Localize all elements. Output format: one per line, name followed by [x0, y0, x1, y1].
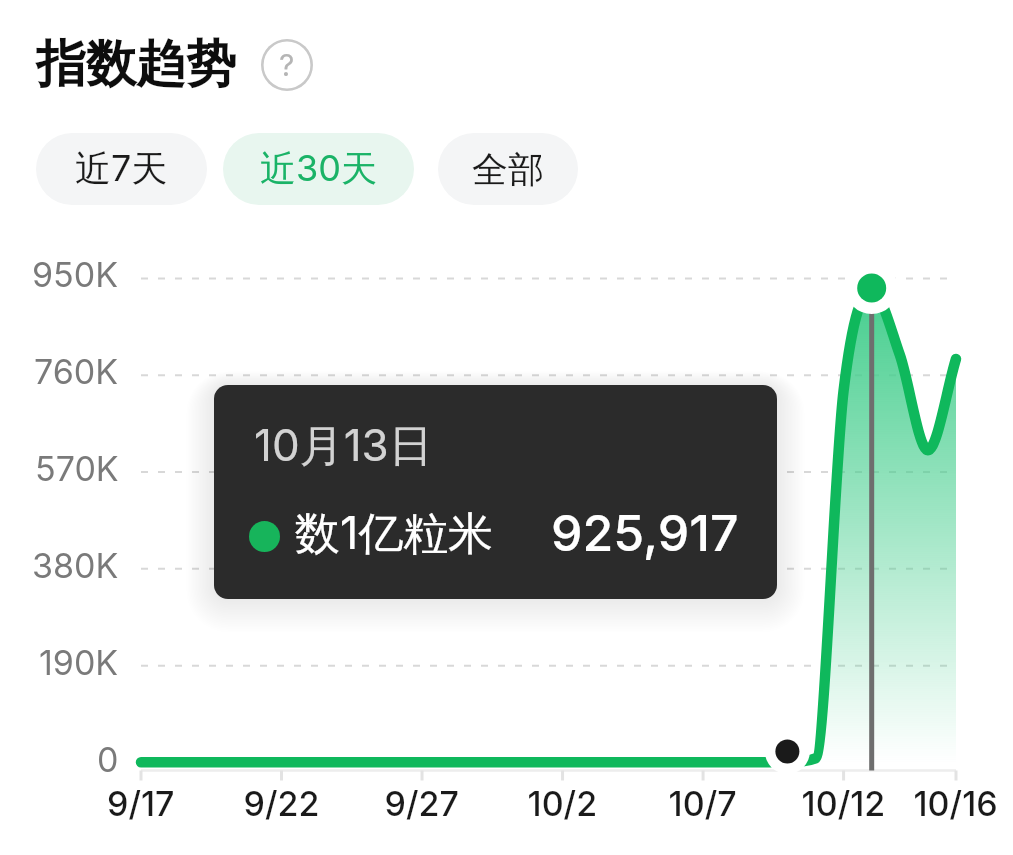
- staticText: ?: [279, 47, 295, 83]
- staticText: 近30天: [260, 146, 377, 192]
- staticText: 数1亿粒米: [295, 505, 494, 562]
- staticText: 380K: [32, 545, 119, 586]
- staticText: 指数趋势: [36, 33, 236, 96]
- staticText: 0: [97, 739, 119, 780]
- staticText: 190K: [39, 642, 119, 683]
- staticText: 近7天: [75, 146, 168, 192]
- button[interactable]: 全部: [438, 133, 578, 205]
- button[interactable]: 近7天: [36, 133, 207, 205]
- button[interactable]: 帮助: [261, 39, 313, 91]
- staticText: 925,917: [551, 503, 739, 563]
- staticText: 760K: [34, 351, 119, 392]
- staticText: 570K: [35, 448, 119, 489]
- staticText: 全部: [472, 147, 544, 192]
- staticText: 950K: [32, 254, 119, 295]
- button[interactable]: 10月13日: [214, 385, 777, 599]
- button[interactable]: 近30天: [223, 133, 414, 205]
- staticText: 10月13日: [254, 418, 433, 474]
